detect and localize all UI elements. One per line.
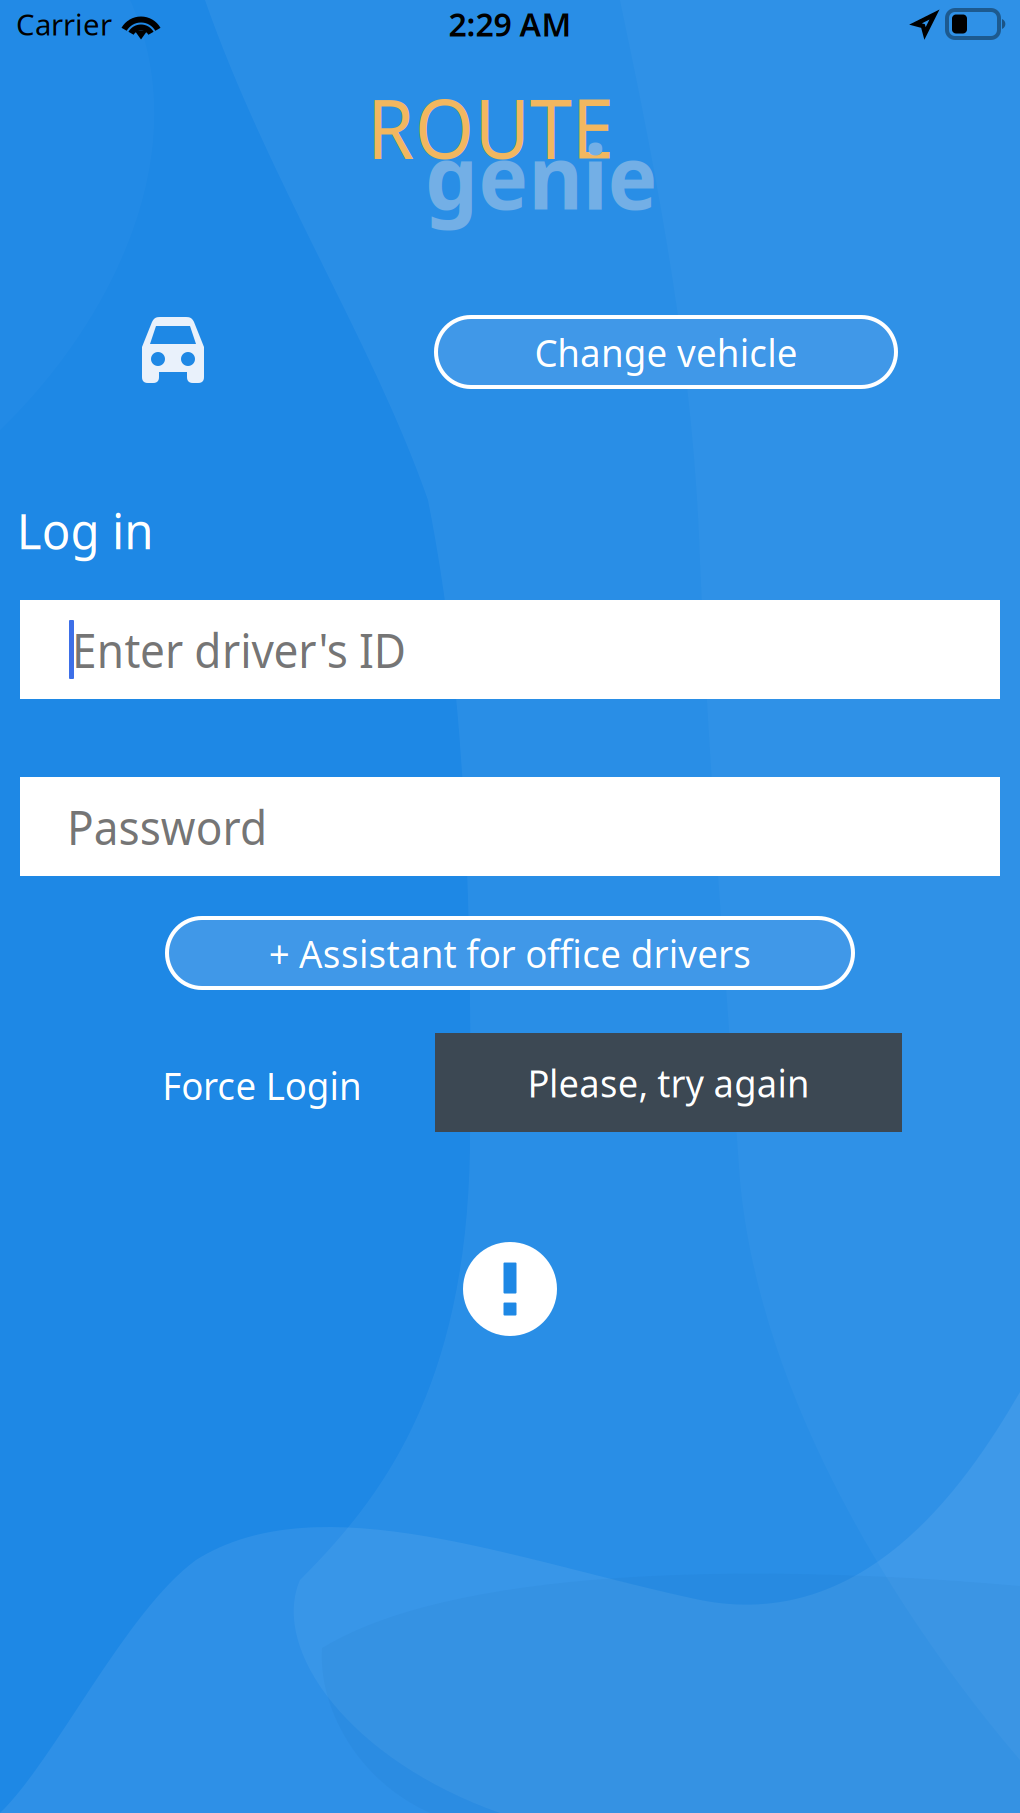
- staticText: Enter driver's ID: [72, 618, 435, 681]
- button[interactable]: + Assistant for office drivers: [165, 916, 855, 990]
- staticText: Change vehicle: [527, 326, 804, 378]
- staticText: Password: [67, 795, 285, 858]
- staticText: Carrier: [16, 4, 112, 43]
- staticText: Please, try again: [518, 1057, 818, 1108]
- staticText: Log in: [14, 497, 156, 563]
- button[interactable]: Force Login: [152, 1055, 372, 1115]
- staticText: Force Login: [157, 1059, 367, 1111]
- staticText: 2:29 AM: [448, 3, 571, 45]
- staticText: ROUTE: [367, 73, 631, 181]
- button[interactable]: Change vehicle: [434, 315, 898, 389]
- staticText: + Assistant for office drivers: [256, 927, 764, 979]
- staticText: genie: [425, 117, 670, 234]
